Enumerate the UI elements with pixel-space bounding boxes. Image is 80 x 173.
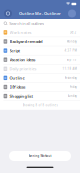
staticText: Shopping list [10,93,34,99]
button[interactable]: Outline [0,73,80,83]
staticText: Script [10,48,21,53]
staticText: Showing 8 of 8 outlines [22,103,57,107]
button[interactable]: DIY ideas [0,83,80,92]
button[interactable]: Search in all outlines [0,19,80,28]
button[interactable]: Shopping list [0,92,80,101]
button[interactable]: Vacation ideas [0,55,80,64]
button[interactable]: Evening Workout [9,151,71,161]
staticText: Sunday [68,94,77,98]
staticText: Friday [70,85,77,89]
staticText: DIY ideas [10,84,26,90]
staticText: Oct 2 [70,31,77,34]
staticText: Search in all outlines [9,21,44,26]
staticText: Outline [10,75,25,80]
staticText: 4:37 PM [65,49,77,52]
staticText: Daily priorities [10,66,37,71]
staticText: Work notes [10,30,32,35]
staticText: Backyard remodel [10,39,43,44]
button[interactable]: Work notes [0,28,80,37]
staticText: Vacation ideas [10,57,36,62]
staticText: Outline Me - Outliner [19,11,61,16]
button[interactable]: Backyard remodel [0,37,80,46]
button[interactable]: Daily priorities [0,64,80,73]
staticText: Sep 15 [67,58,77,61]
button[interactable]: Account [68,9,76,17]
button[interactable]: Script [0,46,80,55]
staticText: 11:18 AM [63,67,77,70]
button[interactable]: Sync [4,9,12,17]
staticText: Monday [67,40,77,43]
staticText: Yesterday [65,76,77,80]
staticText: Evening Workout [28,154,51,158]
